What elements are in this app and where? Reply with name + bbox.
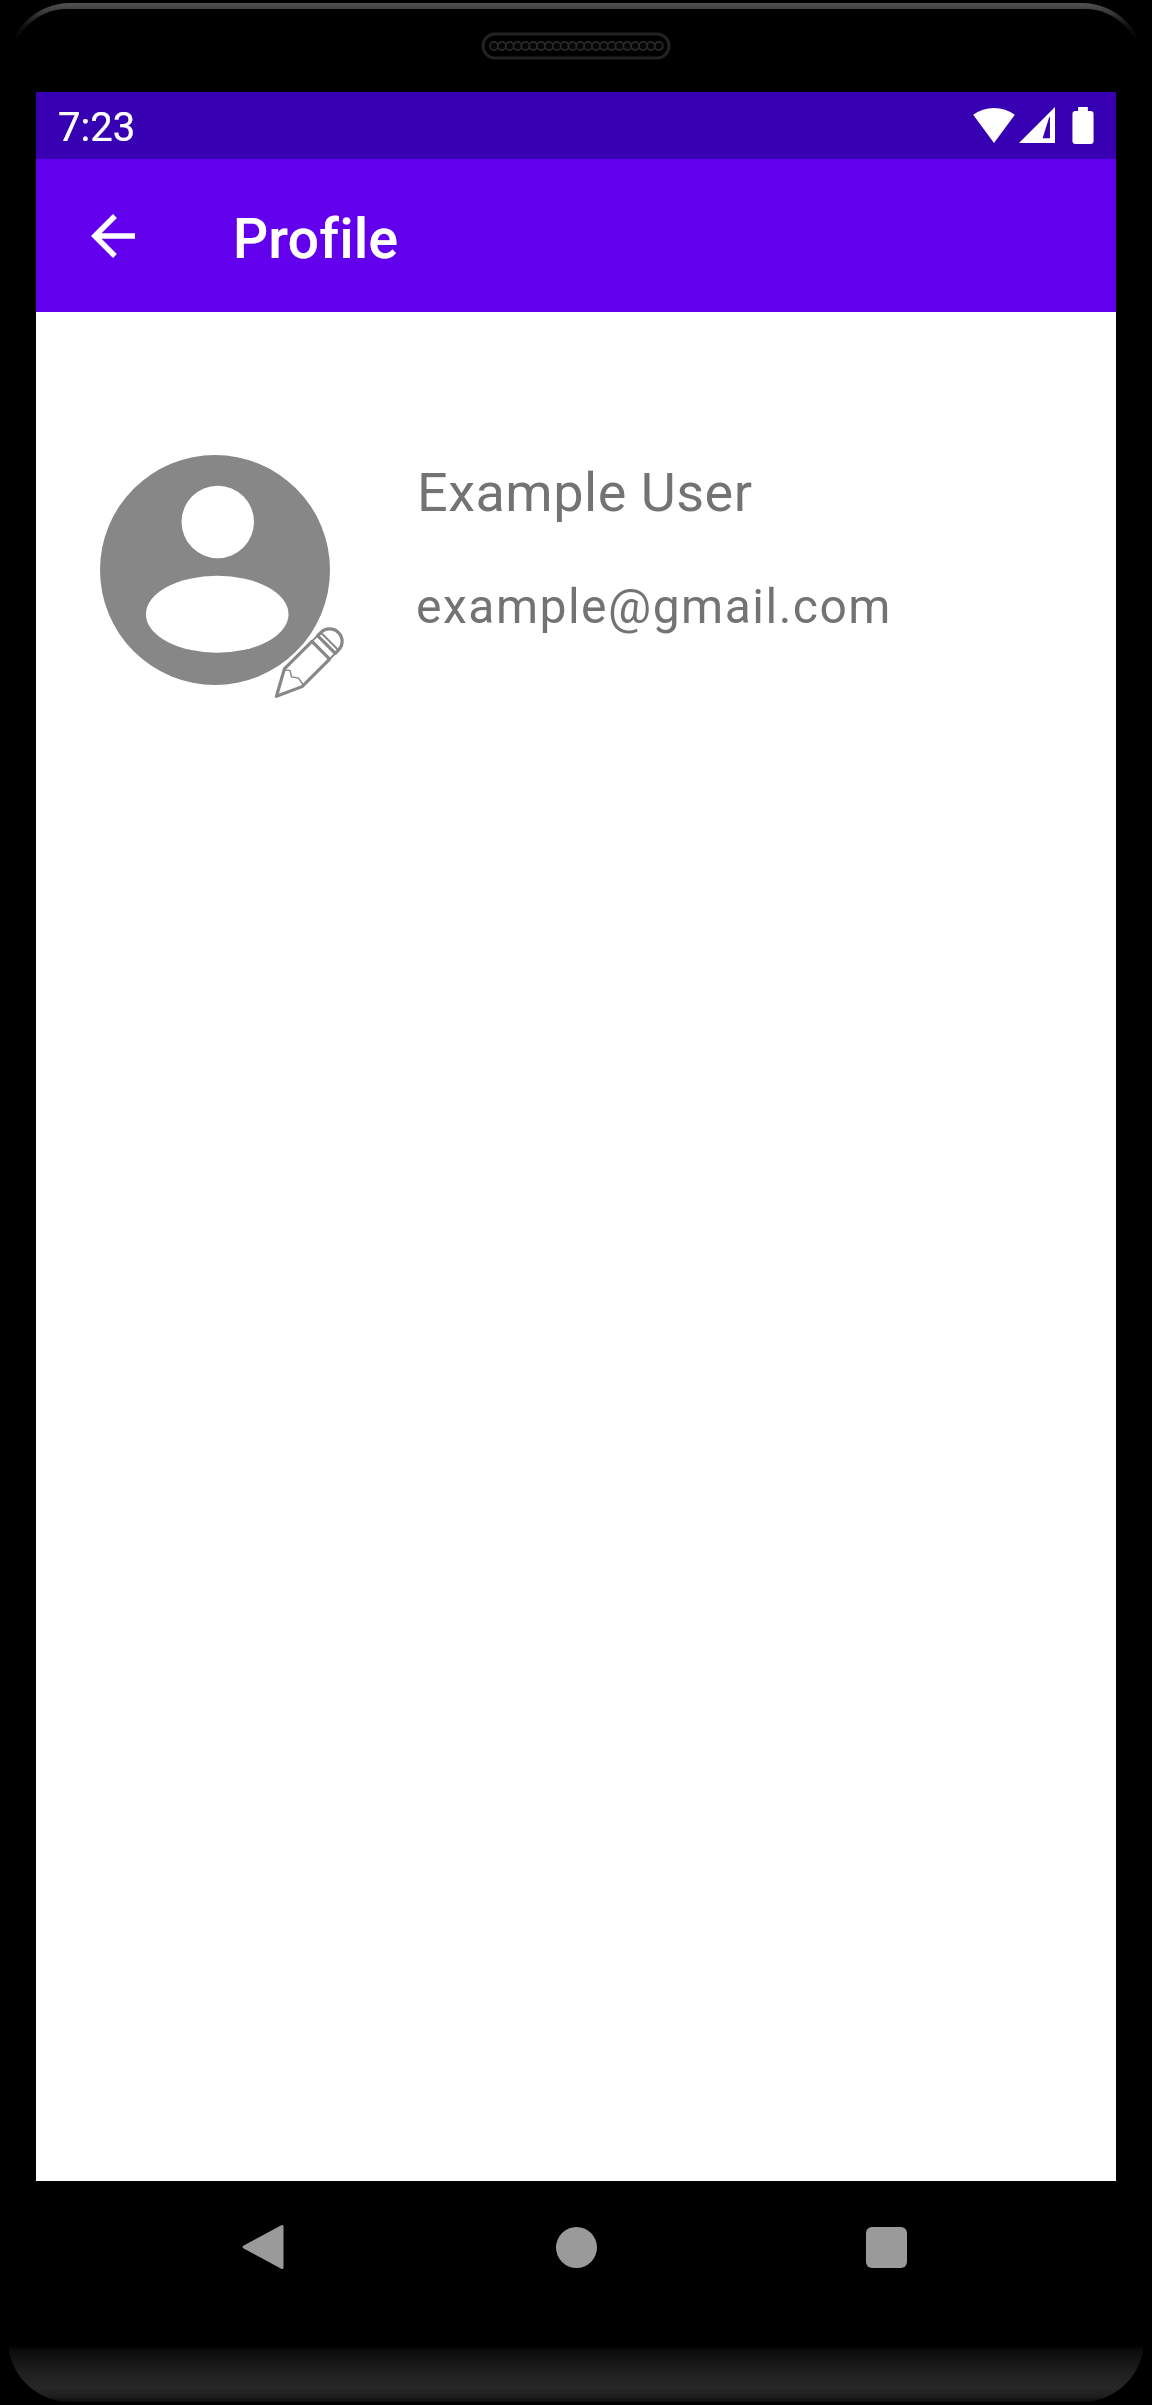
- staticText: 7:23: [58, 104, 136, 151]
- button[interactable]: Back: [207, 2192, 317, 2302]
- button[interactable]: Recent apps: [831, 2192, 941, 2302]
- staticText: Example User: [417, 461, 753, 524]
- button[interactable]: Back: [53, 176, 173, 296]
- staticText: Profile: [233, 207, 399, 271]
- button[interactable]: Edit profile picture: [247, 604, 367, 724]
- staticText: example@gmail.com: [416, 578, 892, 634]
- button[interactable]: Home: [521, 2192, 631, 2302]
- button[interactable]: Profile picture: [100, 455, 330, 685]
